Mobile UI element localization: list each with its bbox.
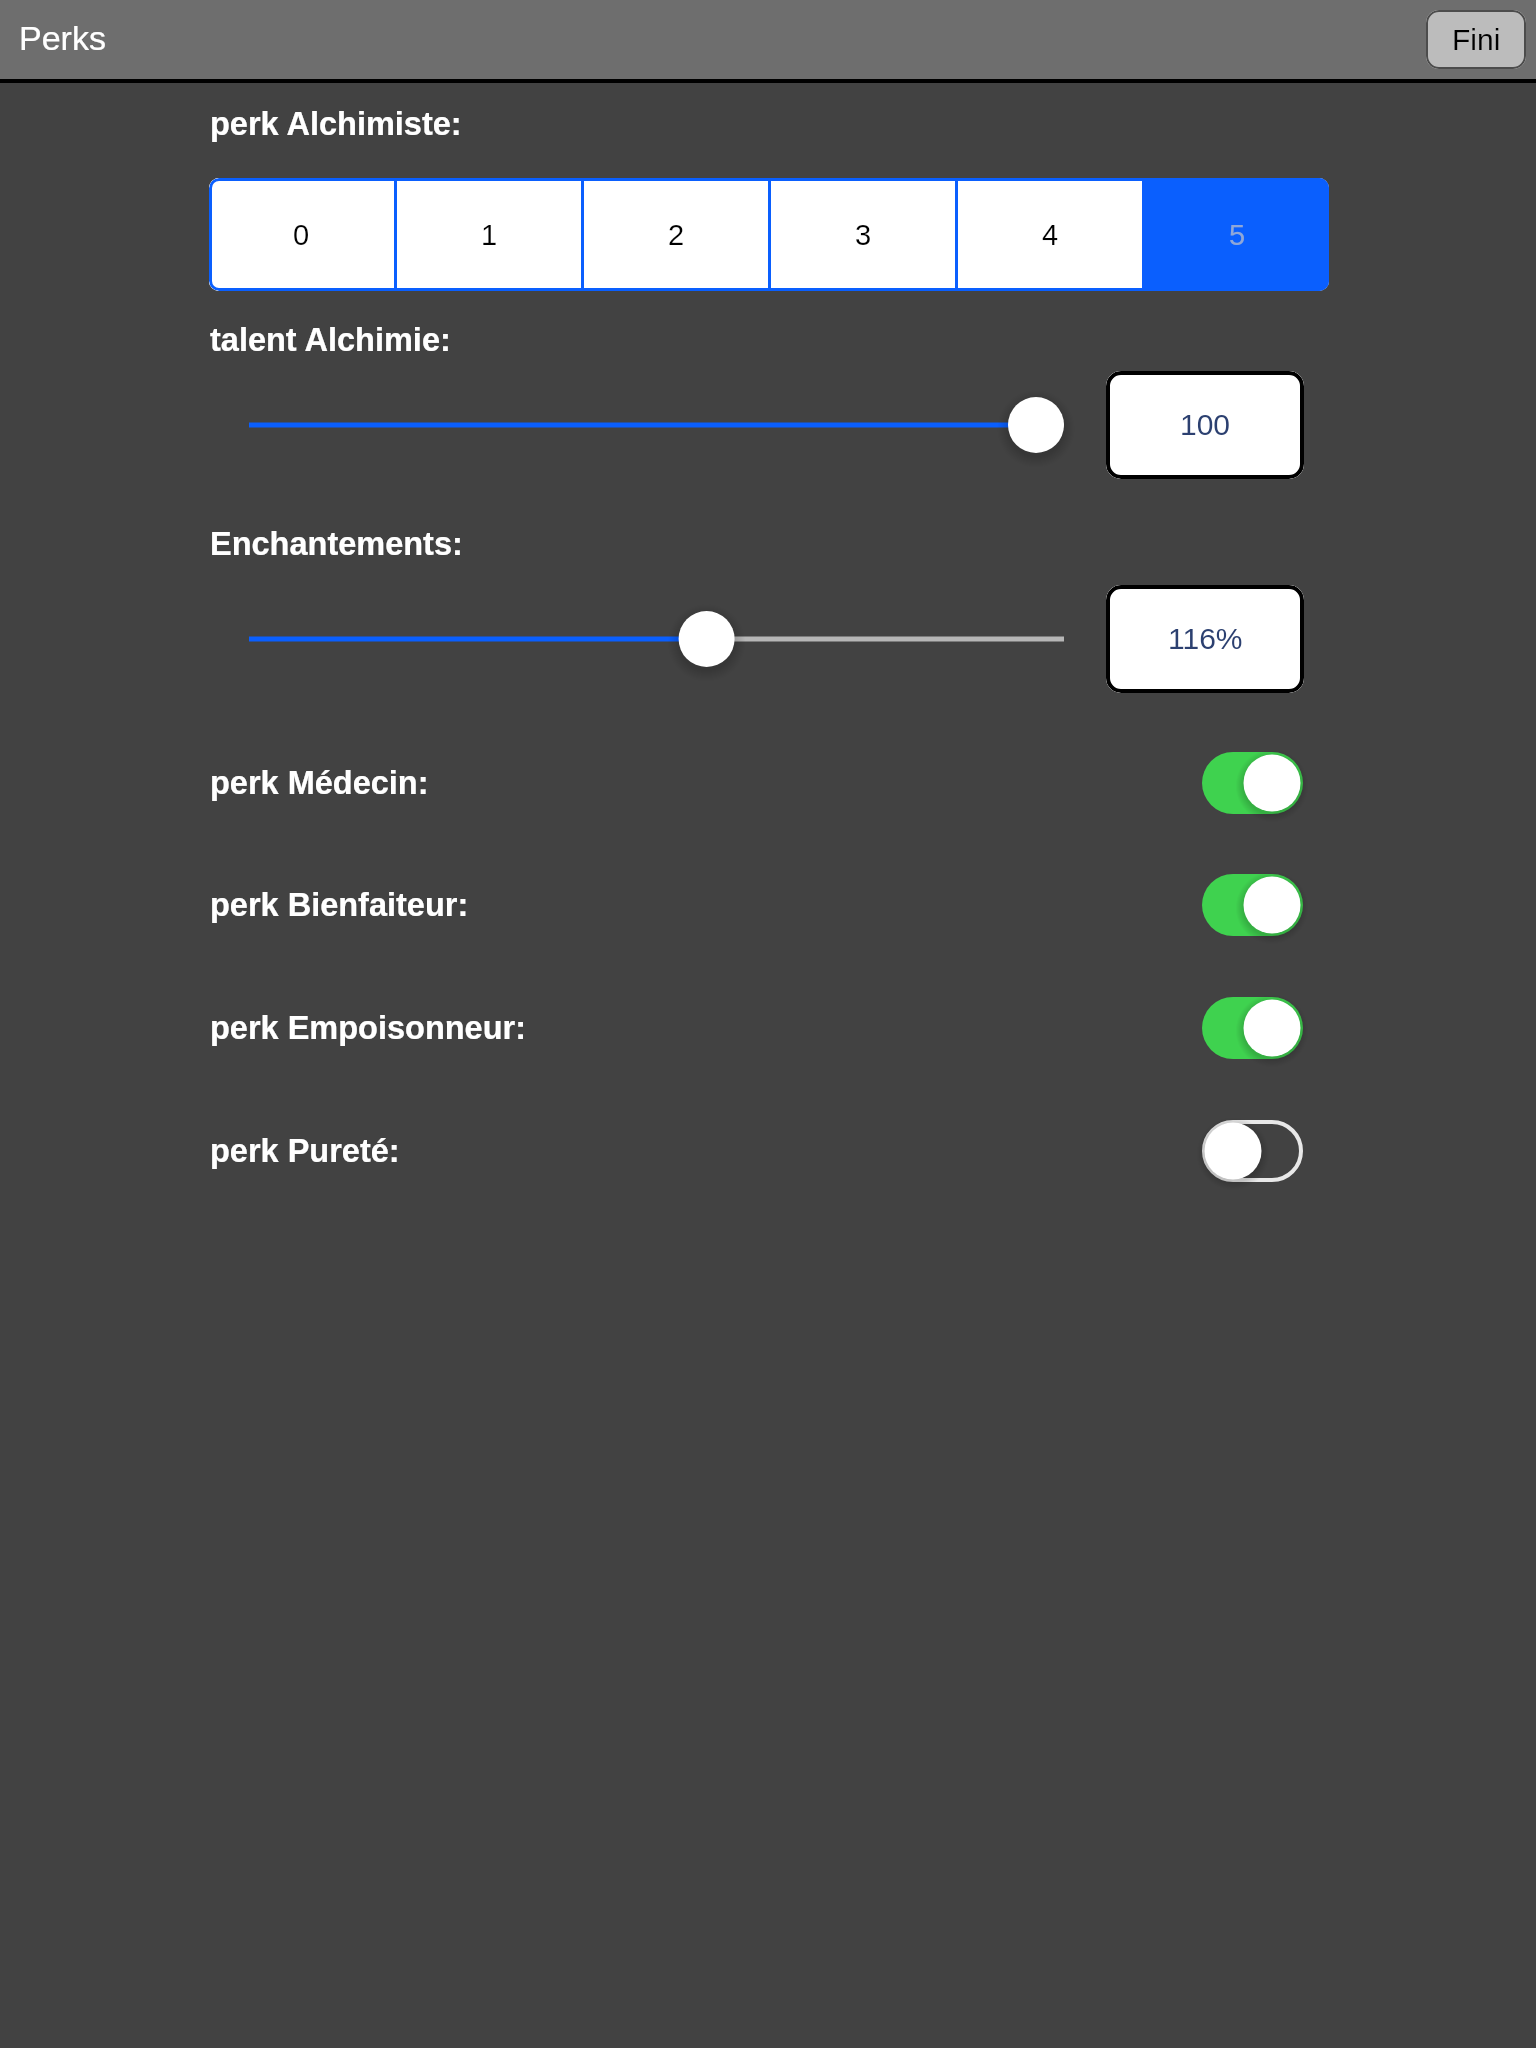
button[interactable]: talent Alchimie value 100 xyxy=(1106,371,1304,479)
button[interactable]: Enchantements value 116% xyxy=(1106,585,1304,693)
staticText: perk Alchimiste: xyxy=(210,106,462,142)
staticText: perk Médecin: xyxy=(210,765,429,801)
button[interactable]: 2 xyxy=(584,178,768,291)
staticText: 3 xyxy=(855,219,872,251)
button[interactable]: talent Alchimie slider, 100 xyxy=(249,353,1064,497)
staticText: 116% xyxy=(1168,622,1243,656)
button[interactable]: Enchantements slider, 116% xyxy=(249,567,1064,711)
button[interactable]: 4 xyxy=(958,178,1142,291)
staticText: perk Pureté: xyxy=(210,1133,400,1169)
staticText: talent Alchimie: xyxy=(210,322,451,358)
button[interactable]: 1 xyxy=(397,178,581,291)
button[interactable]: 0 xyxy=(209,178,394,291)
staticText: 100 xyxy=(1180,408,1231,442)
staticText: perk Bienfaiteur: xyxy=(210,887,469,923)
staticText: 1 xyxy=(481,219,498,251)
staticText: perk Empoisonneur: xyxy=(210,1010,527,1046)
button[interactable]: perk Empoisonneur: on xyxy=(1190,985,1315,1071)
button[interactable]: 3 xyxy=(771,178,955,291)
button[interactable]: Fini xyxy=(1426,10,1526,69)
staticText: Perks xyxy=(19,19,106,57)
staticText: 2 xyxy=(668,219,685,251)
staticText: 0 xyxy=(293,219,310,251)
staticText: Fini xyxy=(1452,23,1501,57)
button[interactable]: perk Bienfaiteur: on xyxy=(1190,862,1315,948)
staticText: 5 xyxy=(1229,219,1246,251)
button[interactable]: 5 xyxy=(1145,178,1329,291)
button[interactable]: perk Pureté: off xyxy=(1190,1108,1315,1194)
staticText: Enchantements: xyxy=(210,526,463,562)
staticText: 4 xyxy=(1042,219,1059,251)
button[interactable]: perk Médecin: on xyxy=(1190,740,1315,826)
